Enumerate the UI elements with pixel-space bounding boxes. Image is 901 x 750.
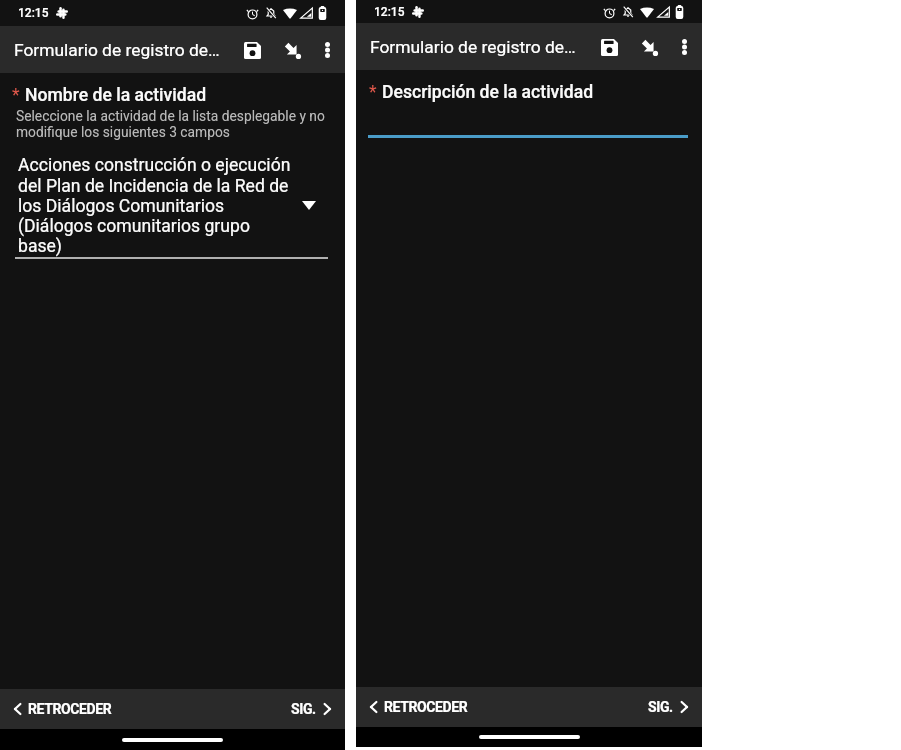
button[interactable]: RETROCEDER: [12, 696, 113, 722]
staticText: Descripción de la actividad: [382, 82, 594, 103]
staticText: RETROCEDER: [28, 701, 112, 717]
staticText: SIG.: [291, 701, 316, 717]
button[interactable]: RETROCEDER: [368, 694, 469, 720]
staticText: Formulario de registro de…: [370, 37, 576, 57]
staticText: *: [12, 85, 20, 106]
staticText: 12:15: [18, 6, 49, 20]
staticText: Acciones construcción o ejecución del Pl…: [18, 155, 298, 256]
button[interactable]: SIG.: [290, 696, 333, 722]
button[interactable]: Acciones construcción o ejecución del Pl…: [18, 155, 316, 256]
staticText: Nombre de la actividad: [25, 85, 207, 106]
staticText: RETROCEDER: [384, 699, 468, 715]
staticText: Seleccione la actividad de la lista desp…: [16, 108, 331, 141]
staticText: *: [369, 82, 377, 103]
button[interactable]: SIG.: [647, 694, 690, 720]
staticText: 12:15: [374, 5, 405, 19]
button[interactable]: Guardar: [587, 25, 631, 69]
button[interactable]: Guardar: [230, 28, 274, 72]
staticText: SIG.: [648, 699, 673, 715]
button[interactable]: Más opciones: [310, 28, 344, 72]
button[interactable]: Enviar: [631, 25, 667, 69]
button[interactable]: Enviar: [274, 28, 310, 72]
button[interactable]: Más opciones: [667, 25, 701, 69]
staticText: Formulario de registro de…: [14, 40, 220, 60]
